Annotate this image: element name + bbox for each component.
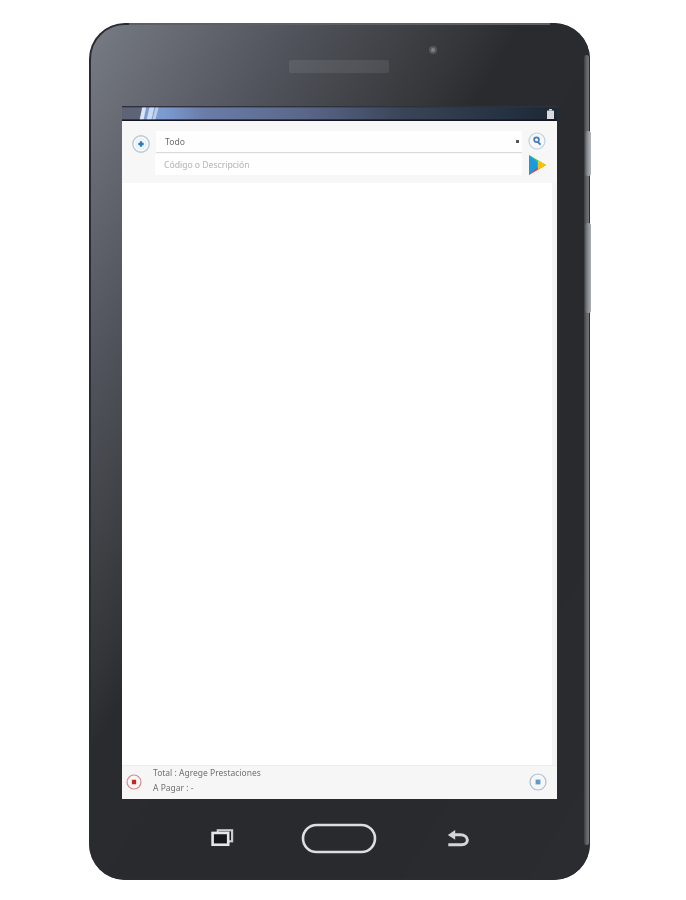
staticText: Todo [165,136,185,148]
staticText: Código o Descripción [164,159,250,171]
staticText: Total : Agrege Prestaciones [153,767,261,779]
button[interactable]: Atrás [435,816,479,860]
button[interactable]: Agregar [130,133,151,154]
button[interactable]: Confirmar [527,771,548,792]
button[interactable]: Play Store [526,153,548,177]
button[interactable]: Inicio [292,815,386,861]
button[interactable]: Todo [156,131,522,152]
button[interactable]: Código o Descripción [155,154,522,175]
staticText: A Pagar : - [153,782,194,794]
button[interactable]: Detener [124,772,144,792]
button[interactable]: Recientes [201,815,245,859]
button[interactable]: Buscar [526,130,548,152]
